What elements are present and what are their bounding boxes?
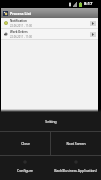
staticText: Process List bbox=[10, 11, 32, 16]
staticText: Notification bbox=[10, 19, 27, 23]
button[interactable]: Notification bbox=[1, 18, 98, 28]
button[interactable]: Root Screen bbox=[51, 132, 101, 155]
button[interactable]: Configure bbox=[0, 156, 50, 180]
button[interactable]: Setting bbox=[0, 112, 101, 131]
button[interactable]: Open bbox=[90, 21, 96, 26]
button[interactable]: Work Orders bbox=[1, 29, 98, 39]
button[interactable]: Back(Business Application) bbox=[50, 156, 101, 180]
button[interactable]: Open bbox=[90, 32, 96, 37]
staticText: Root Screen bbox=[66, 141, 86, 146]
staticText: Close bbox=[21, 141, 30, 146]
staticText: Back(Business Application) bbox=[54, 168, 97, 173]
staticText: 8:17 bbox=[84, 1, 93, 7]
staticText: Configure bbox=[17, 168, 33, 173]
button[interactable]: Close bbox=[0, 132, 50, 155]
staticText: 22.06.2011 - 11:00 bbox=[10, 35, 33, 39]
staticText: 22.06.2011 - 11:00 bbox=[10, 24, 33, 28]
staticText: Work Orders bbox=[10, 30, 28, 34]
staticText: Setting bbox=[45, 119, 57, 124]
